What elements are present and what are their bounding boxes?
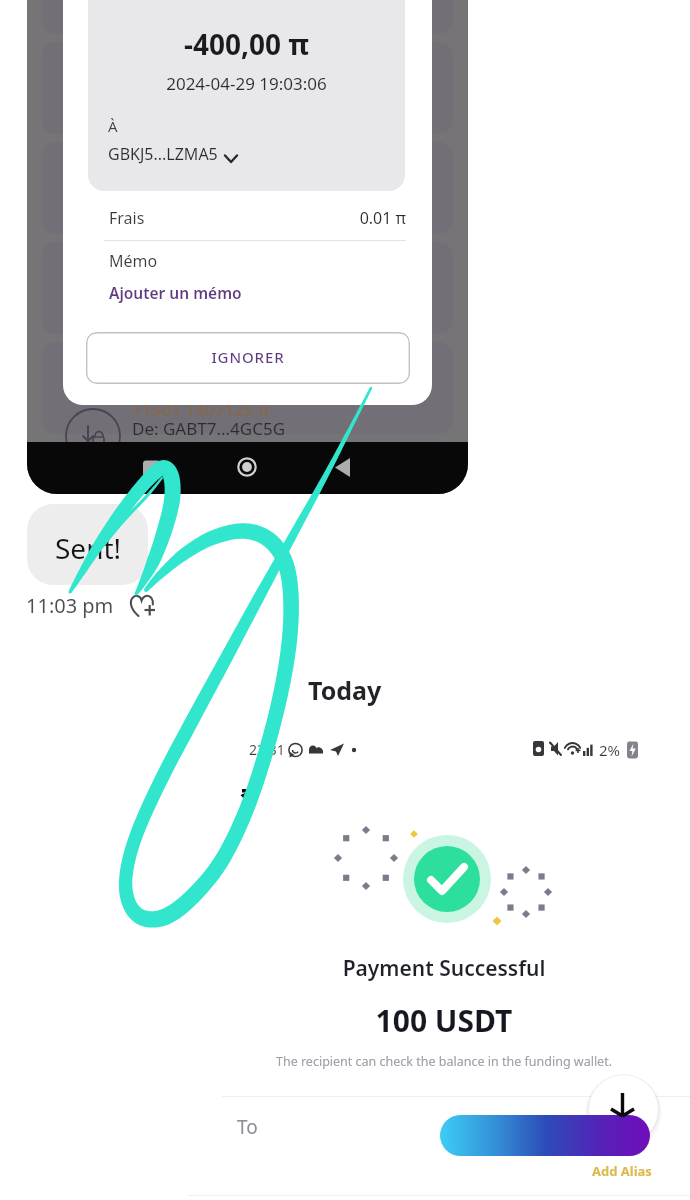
staticText: De: GABT7...4GC5G [132, 417, 286, 440]
staticText: GBKJ5...LZMA5 [108, 143, 218, 165]
staticText: Ajouter un mémo [109, 282, 242, 303]
staticText: Frais [109, 207, 145, 229]
staticText: 23:31 [249, 740, 285, 759]
staticText: Payment Successful [198, 954, 690, 983]
staticText: 2% [599, 740, 621, 760]
staticText: Sent! [55, 529, 122, 567]
button[interactable]: IGNORER [86, 332, 410, 384]
staticText: À [108, 116, 118, 136]
staticText: -400,00 π [88, 25, 405, 63]
staticText: 2024-03-27 08:30 [132, 441, 253, 461]
staticText: The recipient can check the balance in t… [198, 1053, 690, 1070]
button[interactable]: Collapse [589, 1075, 658, 1144]
staticText: Today [308, 673, 382, 707]
button[interactable] [440, 1115, 650, 1156]
staticText: 2024-04-29 19:03:06 [88, 72, 405, 95]
staticText: +1501,1407125 π [132, 398, 270, 421]
staticText: 0.01 π [109, 207, 406, 229]
staticText: To [237, 1114, 258, 1140]
staticText: Add Alias [592, 1162, 652, 1180]
staticText: Mémo [109, 250, 158, 272]
staticText: 11:03 pm [26, 592, 114, 619]
staticText: IGNORER [86, 347, 410, 367]
staticText: 100 USDT [198, 1000, 690, 1041]
